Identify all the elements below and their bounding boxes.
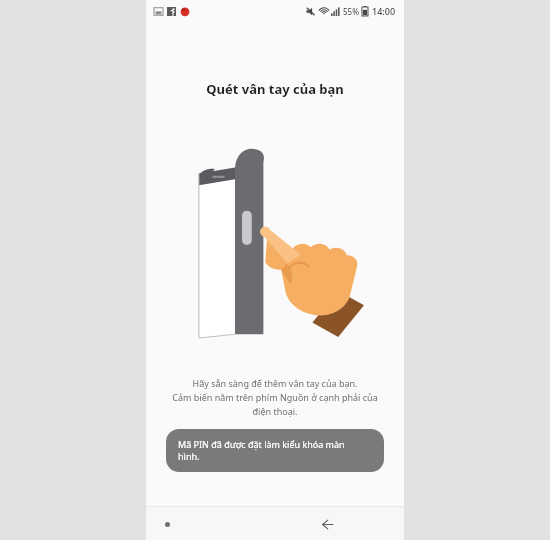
- staticText: 55%: [343, 6, 359, 17]
- staticText: Quét vân tay của bạn: [146, 80, 404, 98]
- staticText: 14:00: [372, 5, 396, 17]
- button[interactable]: Mã PIN đã được đặt làm kiểu khóa màn hìn…: [166, 429, 384, 472]
- staticText: Mã PIN đã được đặt làm kiểu khóa màn hìn…: [178, 438, 372, 463]
- staticText: Hãy sẵn sàng để thêm vân tay của bạn. Cả…: [156, 377, 394, 418]
- button[interactable]: Back: [312, 509, 342, 539]
- button[interactable]: Recent apps: [154, 511, 180, 537]
